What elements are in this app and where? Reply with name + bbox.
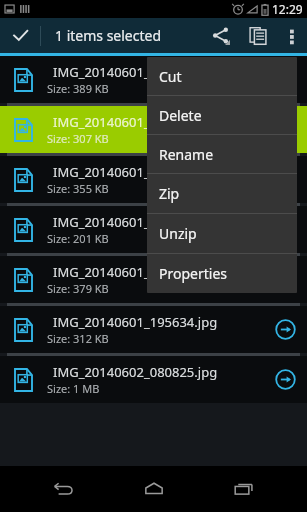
staticText: IMG_20140601_195633.jpg <box>53 263 218 281</box>
staticText: 1 items selected <box>55 26 201 45</box>
staticText: Unzip <box>159 224 197 243</box>
button[interactable]: Copy <box>239 18 277 53</box>
button[interactable]: IMG_20140601_195633.jpg <box>0 206 307 253</box>
staticText: IMG_20140601_195634.jpg <box>53 313 218 331</box>
button[interactable]: Rename <box>147 135 297 173</box>
button[interactable]: Home <box>126 466 182 512</box>
staticText: IMG_20140601_195631.jpg <box>53 113 218 131</box>
staticText: IMG_20140601_195632.jpg <box>53 163 218 181</box>
button[interactable]: Open file details <box>263 356 307 403</box>
staticText: Properties <box>159 264 227 283</box>
button[interactable]: Cut <box>147 57 297 95</box>
button[interactable]: Zip <box>147 174 297 213</box>
button[interactable]: More options <box>277 18 307 53</box>
staticText: Size: 1 MB <box>47 381 100 396</box>
button[interactable]: Delete <box>147 96 297 134</box>
button[interactable]: Share <box>201 18 239 53</box>
button[interactable]: Back <box>35 466 91 512</box>
staticText: Delete <box>159 106 202 125</box>
button[interactable]: Open file details <box>263 56 307 103</box>
button[interactable]: Open file details <box>263 206 307 253</box>
button[interactable]: IMG_20140601_195632.jpg <box>0 156 307 203</box>
staticText: Zip <box>159 184 180 203</box>
button[interactable]: Open file details <box>263 256 307 303</box>
staticText: IMG_20140602_080825.jpg <box>53 363 218 381</box>
staticText: Size: 389 KB <box>47 81 109 96</box>
button[interactable]: Confirm selection <box>0 18 40 53</box>
staticText: Size: 201 KB <box>47 231 109 246</box>
button[interactable]: IMG_20140601_195631.jpg <box>0 106 307 153</box>
button[interactable]: Unzip <box>147 214 297 253</box>
staticText: Size: 379 KB <box>47 281 109 296</box>
button[interactable]: IMG_20140601_195633.jpg <box>0 256 307 303</box>
button[interactable]: Open file details <box>263 106 307 153</box>
button[interactable]: IMG_20140601_195634.jpg <box>0 306 307 353</box>
staticText: Size: 355 KB <box>47 181 109 196</box>
button[interactable]: Recent apps <box>216 466 272 512</box>
staticText: Size: 312 KB <box>47 331 109 346</box>
button[interactable]: Properties <box>147 254 297 293</box>
staticText: 12:29 <box>272 1 303 17</box>
staticText: IMG_20140601_195633.jpg <box>53 213 218 231</box>
button[interactable]: Open file details <box>263 306 307 353</box>
button[interactable]: IMG_20140602_080825.jpg <box>0 356 307 403</box>
staticText: Rename <box>159 145 214 164</box>
staticText: IMG_20140601_195630.jpg <box>53 63 218 81</box>
staticText: Size: 307 KB <box>47 131 109 146</box>
button[interactable]: IMG_20140601_195630.jpg <box>0 56 307 103</box>
staticText: Cut <box>159 67 182 86</box>
button[interactable]: Open file details <box>263 156 307 203</box>
